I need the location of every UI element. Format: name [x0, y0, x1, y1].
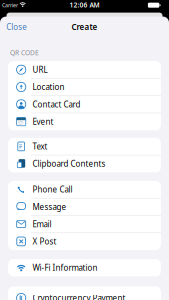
button[interactable]: Close	[6, 22, 27, 32]
button[interactable]: Message	[8, 198, 161, 215]
button[interactable]: Email	[8, 215, 161, 233]
button[interactable]: X Post	[8, 233, 161, 250]
staticText: Text	[32, 141, 47, 152]
staticText: 12:06 AM	[69, 0, 99, 10]
staticText: Close	[6, 22, 27, 32]
staticText: Email	[32, 219, 51, 229]
staticText: Message	[32, 201, 66, 212]
staticText: Event	[32, 116, 53, 127]
button[interactable]: URL	[8, 61, 161, 78]
staticText: Cryptocurrency Payment	[32, 293, 125, 300]
staticText: QR CODE	[10, 48, 39, 57]
button[interactable]: Location	[8, 78, 161, 96]
button[interactable]: Contact Card	[8, 96, 161, 113]
button[interactable]: Clipboard Contents	[8, 155, 161, 172]
button[interactable]: Event	[8, 113, 161, 130]
button[interactable]: Phone Call	[8, 181, 161, 198]
button[interactable]: Cryptocurrency Payment	[8, 289, 161, 300]
staticText: Phone Call	[32, 184, 72, 195]
staticText: Contact Card	[32, 99, 80, 110]
staticText: Clipboard Contents	[32, 158, 105, 169]
button[interactable]: Wi-Fi Information	[8, 259, 161, 276]
staticText: Wi-Fi Information	[32, 262, 97, 273]
staticText: Location	[32, 82, 64, 92]
staticText: X Post	[32, 236, 56, 247]
button[interactable]: Text	[8, 138, 161, 155]
staticText: Carrier	[2, 2, 18, 9]
staticText: URL	[32, 64, 47, 75]
staticText: Create	[71, 22, 97, 32]
